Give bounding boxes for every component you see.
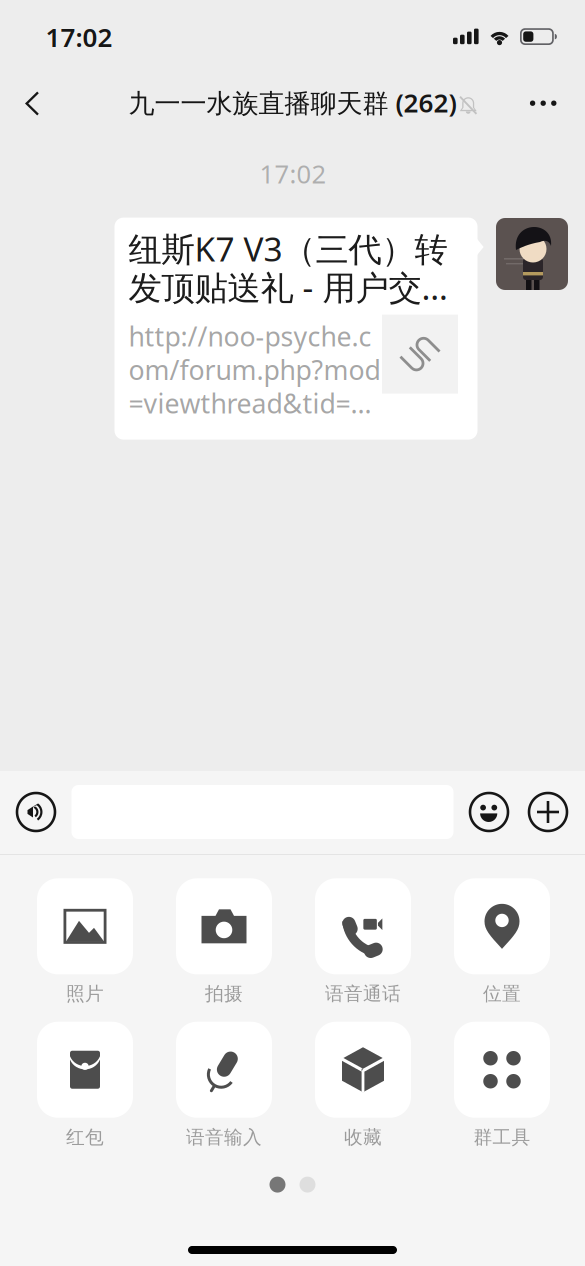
staticText: 17:02 — [259, 156, 326, 191]
staticText: 拍摄 — [205, 982, 243, 1005]
button[interactable]: 红包 — [15, 1024, 154, 1146]
button[interactable]: More functions — [526, 790, 570, 834]
staticText: 群工具 — [473, 1126, 530, 1149]
staticText: 红包 — [66, 1126, 104, 1149]
button[interactable]: 群工具 — [432, 1024, 571, 1146]
button[interactable]: Emoji — [467, 790, 511, 834]
button[interactable]: 语音通话 — [293, 881, 432, 1003]
button[interactable]: Back — [4, 75, 60, 131]
button[interactable]: 位置 — [432, 881, 571, 1003]
button[interactable]: Hold to talk — [14, 790, 58, 834]
staticText: 语音通话 — [325, 982, 401, 1005]
button[interactable]: 照片 — [15, 881, 154, 1003]
staticText: 纽斯K7 V3（三代）转 — [128, 226, 447, 271]
button[interactable]: 语音输入 — [154, 1024, 293, 1146]
staticText: 发顶贴送礼 - 用户交… — [128, 265, 447, 309]
button[interactable]: More — [515, 75, 571, 131]
staticText: 九一一水族直播聊天群 (262) — [128, 85, 456, 120]
staticText: 位置 — [483, 982, 521, 1005]
button[interactable]: 收藏 — [293, 1024, 432, 1146]
staticText: 语音输入 — [186, 1126, 262, 1149]
staticText: http://noo-psyche.c — [128, 318, 371, 354]
staticText: =viewthread&tid=… — [128, 385, 371, 421]
staticText: 17:02 — [45, 19, 112, 55]
button[interactable]: 拍摄 — [154, 881, 293, 1003]
staticText: om/forum.php?mod — [128, 352, 380, 387]
staticText: 收藏 — [344, 1126, 382, 1149]
staticText: 照片 — [66, 982, 104, 1005]
